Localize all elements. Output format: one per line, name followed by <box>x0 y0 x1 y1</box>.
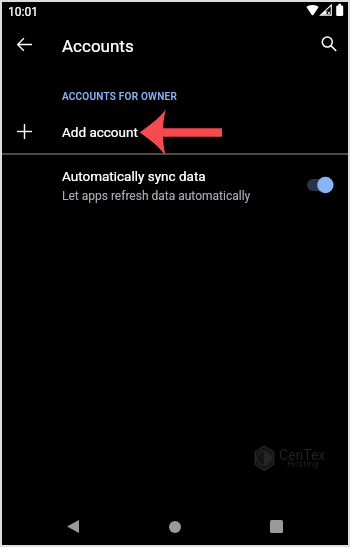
button[interactable]: Search <box>311 26 350 66</box>
button[interactable]: Back <box>4 24 44 64</box>
staticText: ACCOUNTS FOR OWNER <box>62 91 177 103</box>
staticText: Automatically sync data <box>62 168 206 184</box>
button[interactable]: Automatically sync data toggle <box>298 168 336 202</box>
staticText: 10:01 <box>8 5 38 19</box>
staticText: Add account <box>62 124 138 140</box>
button[interactable]: Back <box>51 505 95 547</box>
button[interactable]: Automatically sync data <box>2 154 348 210</box>
button[interactable]: Add account <box>2 110 348 153</box>
button[interactable]: Home <box>153 505 197 547</box>
staticText: Accounts <box>62 36 134 56</box>
staticText: Hosting <box>287 459 319 470</box>
button[interactable]: Recent apps <box>254 505 298 547</box>
staticText: CenTex <box>279 447 326 463</box>
staticText: Let apps refresh data automatically <box>62 189 251 203</box>
